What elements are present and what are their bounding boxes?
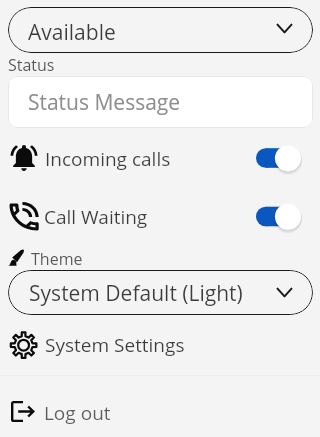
- button[interactable]: System Settings: [0, 321, 320, 368]
- staticText: Theme: [31, 248, 83, 270]
- staticText: Log out: [44, 400, 111, 426]
- staticText: Available: [28, 18, 116, 47]
- button[interactable]: Call Waiting: [0, 192, 320, 239]
- staticText: Status: [8, 54, 55, 76]
- button[interactable]: Status Message: [8, 76, 313, 128]
- staticText: System Default (Light): [29, 279, 243, 308]
- staticText: Call Waiting: [44, 204, 148, 230]
- button[interactable]: System Default (Light): [8, 270, 313, 315]
- button[interactable]: Log out: [0, 389, 320, 436]
- staticText: Incoming calls: [45, 146, 171, 172]
- staticText: Status Message: [28, 88, 181, 117]
- button[interactable]: Incoming calls: [0, 134, 320, 181]
- staticText: System Settings: [45, 332, 185, 358]
- button[interactable]: Available: [8, 7, 313, 53]
